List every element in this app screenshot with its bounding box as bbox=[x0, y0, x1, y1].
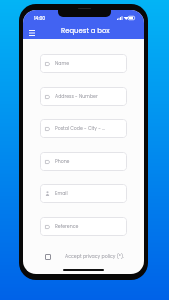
staticText: Phone bbox=[55, 158, 70, 165]
staticText: Postal Code - City - ... bbox=[55, 125, 105, 132]
button[interactable]: Accept privacy policy (*). bbox=[45, 253, 125, 260]
staticText: Email bbox=[55, 190, 68, 197]
staticText: Address - Number bbox=[55, 93, 98, 100]
staticText: Accept privacy policy (*). bbox=[65, 253, 125, 260]
button[interactable]: Email bbox=[40, 184, 127, 203]
button[interactable]: Postal Code - City - ... bbox=[40, 119, 127, 138]
staticText: 14:00 bbox=[34, 15, 46, 21]
button[interactable]: Name bbox=[40, 54, 127, 73]
button[interactable]: Open navigation menu bbox=[24, 25, 40, 41]
staticText: Name bbox=[55, 60, 70, 67]
staticText: Request a box bbox=[61, 26, 110, 36]
button[interactable]: Reference bbox=[40, 217, 127, 236]
button[interactable]: Address - Number bbox=[40, 87, 127, 106]
staticText: Reference bbox=[55, 223, 79, 230]
button[interactable]: Phone bbox=[40, 152, 127, 171]
